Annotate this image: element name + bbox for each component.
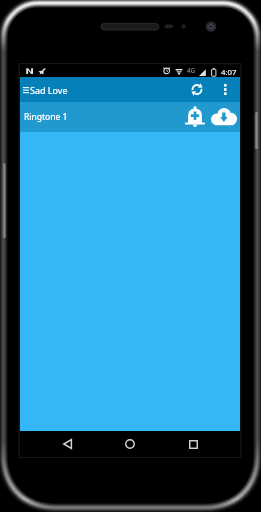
button[interactable]: Download [210, 102, 238, 132]
staticText: Ringtone 1 [24, 111, 68, 123]
button[interactable]: Back [47, 431, 87, 457]
button[interactable]: Home [110, 431, 150, 457]
staticText: 4G [187, 66, 196, 74]
staticText: 4:07 [221, 67, 237, 78]
staticText: Sad Love [30, 84, 68, 96]
button[interactable]: Ringtone 1 [20, 102, 240, 132]
button[interactable]: Refresh [185, 77, 209, 102]
button[interactable]: More options [214, 77, 236, 102]
button[interactable]: Open navigation drawer [16, 77, 36, 102]
button[interactable]: Set as ringtone [183, 102, 207, 132]
button[interactable]: Recent apps [173, 431, 213, 457]
